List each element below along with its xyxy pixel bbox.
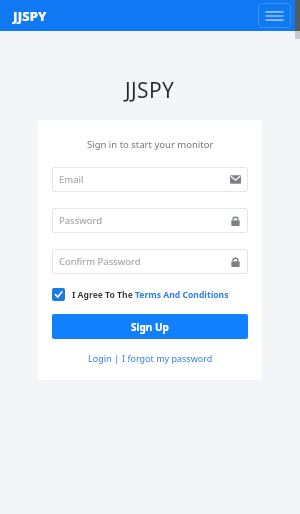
staticText: Password — [59, 214, 230, 227]
staticText: Sign Up — [131, 320, 169, 334]
staticText: Sign in to start your monitor — [87, 138, 214, 151]
staticText: I Agree To The Terms And Conditions — [72, 289, 229, 301]
staticText: Confirm Password — [59, 255, 230, 268]
button[interactable]: Email — [52, 167, 248, 192]
button[interactable]: Login — [88, 352, 112, 364]
button[interactable]: I Agree To The Terms And Conditions — [52, 288, 248, 301]
button[interactable]: Confirm Password — [52, 249, 248, 274]
staticText: | — [112, 352, 122, 364]
button[interactable]: Menu — [258, 3, 291, 28]
button[interactable]: I forgot my password — [122, 352, 213, 364]
button[interactable]: JJSPY — [13, 7, 47, 25]
button[interactable]: Password — [52, 208, 248, 233]
staticText: Email — [59, 173, 230, 186]
button[interactable]: Sign Up — [52, 314, 248, 339]
staticText: JJSPY — [125, 76, 175, 105]
